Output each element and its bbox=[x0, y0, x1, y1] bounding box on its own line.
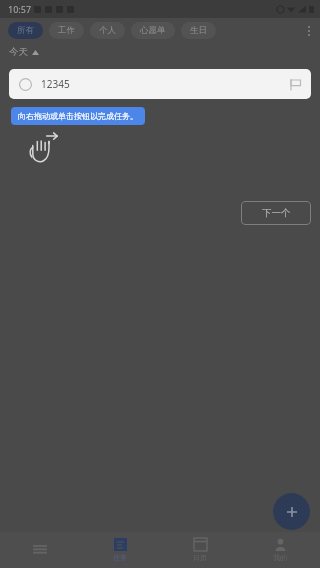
staticText: 日历 bbox=[193, 553, 207, 562]
button[interactable]: Add task bbox=[273, 493, 310, 530]
button[interactable]: Menu bbox=[0, 532, 80, 568]
button[interactable]: 向右拖动或单击按钮以完成任务。 bbox=[11, 107, 145, 125]
button[interactable]: 日历 bbox=[160, 532, 240, 568]
button[interactable]: 所有 bbox=[8, 22, 43, 39]
button[interactable]: 任务 bbox=[80, 532, 160, 568]
staticText: 向右拖动或单击按钮以完成任务。 bbox=[18, 111, 138, 121]
staticText: 任务 bbox=[113, 553, 127, 562]
staticText: 心愿单 bbox=[140, 25, 166, 36]
button[interactable]: 工作 bbox=[49, 22, 84, 39]
button[interactable]: More options bbox=[298, 18, 320, 43]
staticText: 今天 bbox=[9, 46, 28, 58]
button[interactable]: 生日 bbox=[181, 22, 216, 39]
staticText: 我的 bbox=[273, 553, 287, 562]
other: Flag bbox=[290, 79, 301, 90]
staticText: 下一个 bbox=[262, 207, 291, 219]
button[interactable]: 今天 bbox=[0, 43, 320, 61]
staticText: 工作 bbox=[58, 25, 75, 36]
staticText: 生日 bbox=[190, 25, 207, 36]
staticText: 12345 bbox=[41, 77, 70, 91]
button[interactable]: 个人 bbox=[90, 22, 125, 39]
button[interactable]: 下一个 bbox=[241, 201, 311, 225]
button[interactable]: 12345 bbox=[9, 69, 311, 99]
staticText: 10:57 bbox=[8, 3, 32, 15]
button[interactable]: 心愿单 bbox=[131, 22, 175, 39]
staticText: 个人 bbox=[99, 25, 116, 36]
button[interactable]: 我的 bbox=[240, 532, 320, 568]
staticText: 所有 bbox=[17, 25, 34, 36]
